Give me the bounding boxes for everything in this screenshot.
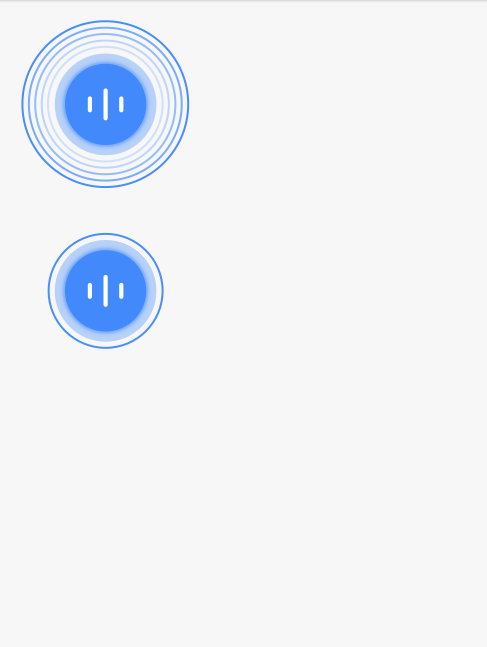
button[interactable]: Listening, compact (46, 231, 166, 351)
button[interactable]: Listening (21, 19, 191, 189)
